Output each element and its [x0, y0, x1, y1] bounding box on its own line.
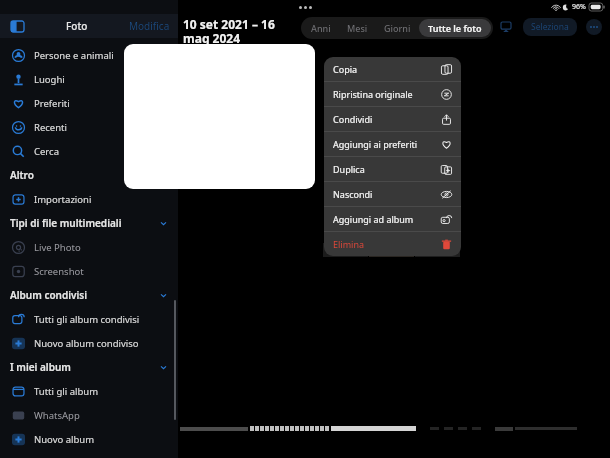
button[interactable]: Giorni — [376, 19, 419, 37]
button[interactable]: Cerca — [12, 139, 170, 163]
staticText: Nuovo album condiviso — [34, 337, 139, 350]
button[interactable]: Recenti — [12, 115, 170, 139]
staticText: Recenti — [34, 121, 67, 134]
staticText: 96% — [572, 2, 586, 12]
staticText: Copia — [333, 63, 358, 75]
staticText: Elimina — [333, 238, 364, 250]
button[interactable]: Copia — [324, 57, 461, 81]
button[interactable]: Nuovo album — [12, 427, 170, 451]
staticText: Ripristina originale — [333, 88, 413, 100]
button[interactable]: Luoghi — [12, 67, 170, 91]
staticText: Modifica — [129, 19, 170, 33]
button[interactable]: Proiezione — [498, 19, 514, 35]
button[interactable]: Duplica — [324, 157, 461, 181]
button[interactable]: Tutti gli album — [12, 379, 170, 403]
button[interactable]: Aggiungi ai preferiti — [324, 132, 461, 156]
staticText: Tipi di file multimediali — [10, 216, 122, 230]
button[interactable]: Aggiungi ad album — [324, 207, 461, 231]
staticText: Cerca — [34, 145, 59, 158]
staticText: Screenshot — [34, 265, 84, 278]
button[interactable]: Nascondi — [324, 182, 461, 206]
staticText: Mesi — [347, 22, 368, 34]
button[interactable]: Persone e animali — [12, 43, 170, 67]
button[interactable]: Screenshot — [12, 259, 170, 283]
staticText: Aggiungi ai preferiti — [333, 138, 418, 150]
staticText: I miei album — [10, 360, 71, 374]
button[interactable]: Ripristina originale — [324, 82, 461, 106]
button[interactable]: Mostra barra laterale — [8, 17, 26, 35]
staticText: Importazioni — [34, 193, 92, 206]
button[interactable]: WhatsApp — [12, 403, 170, 427]
staticText: Tutte le foto — [428, 22, 482, 34]
button[interactable]: Anni — [303, 19, 339, 37]
button[interactable]: Tutti gli album condivisi — [12, 307, 170, 331]
button[interactable]: Foto selezionata — [124, 44, 315, 189]
staticText: Seleziona — [531, 21, 569, 33]
button[interactable]: Preferiti — [12, 91, 170, 115]
staticText: Aggiungi ad album — [333, 213, 414, 225]
button[interactable]: Modifica — [129, 19, 170, 33]
staticText: Luoghi — [34, 73, 65, 86]
staticText: Nascondi — [333, 188, 373, 200]
button[interactable]: Mesi — [339, 19, 376, 37]
staticText: 10 set 2021 – 16 mag 2024 — [183, 16, 275, 47]
button[interactable]: I miei album — [10, 355, 168, 379]
button[interactable]: Album condivisi — [10, 283, 168, 307]
staticText: Duplica — [333, 163, 365, 175]
button[interactable]: Seleziona — [523, 18, 577, 36]
staticText: Giorni — [384, 22, 411, 34]
staticText: Altro — [10, 168, 34, 182]
staticText: Album condivisi — [10, 288, 88, 302]
staticText: Anni — [311, 22, 331, 34]
button[interactable]: Altro — [10, 163, 168, 187]
staticText: Live Photo — [34, 241, 81, 254]
button[interactable]: Nuovo album condiviso — [12, 331, 170, 355]
staticText: Preferiti — [34, 97, 70, 110]
staticText: Tutti gli album — [34, 385, 99, 398]
button[interactable]: Condividi — [324, 107, 461, 131]
staticText: Condividi — [333, 113, 373, 125]
staticText: WhatsApp — [34, 409, 80, 422]
button[interactable]: Altre opzioni — [586, 19, 602, 35]
staticText: Nuovo album — [34, 433, 95, 446]
staticText: Foto — [66, 19, 88, 33]
button[interactable]: Importazioni — [12, 187, 170, 211]
button[interactable]: Elimina — [324, 232, 461, 256]
staticText: Persone e animali — [34, 49, 114, 62]
staticText: Tutti gli album condivisi — [34, 313, 140, 326]
button[interactable]: Live Photo — [12, 235, 170, 259]
button[interactable]: Tutte le foto — [419, 19, 491, 37]
button[interactable]: Tipi di file multimediali — [10, 211, 168, 235]
